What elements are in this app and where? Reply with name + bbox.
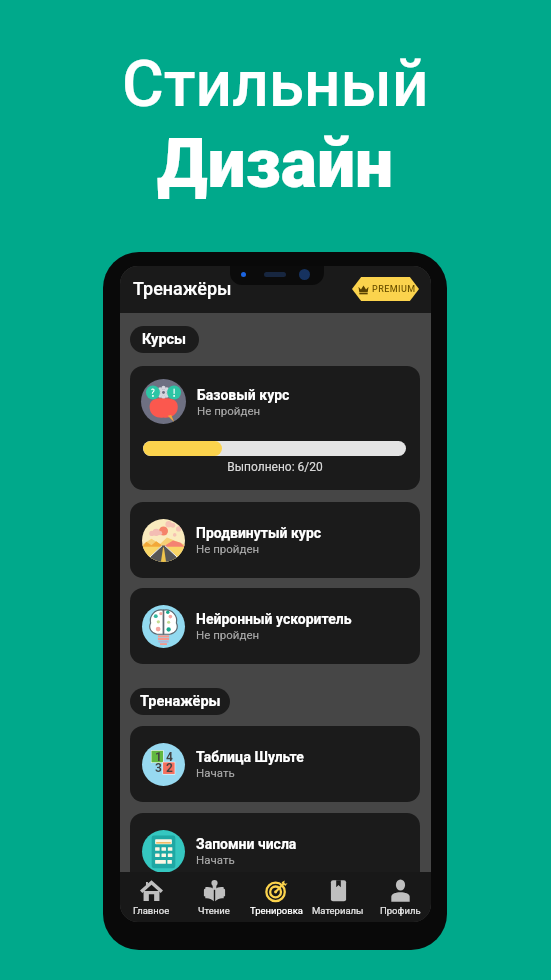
staticText: 4 [166,750,173,764]
staticText: Дизайн [157,124,394,204]
staticText: Главное [133,905,170,916]
staticText: Не пройден [196,542,260,555]
button[interactable]: Базовый курс [130,366,420,490]
staticText: PREMIUM [372,284,416,295]
button[interactable]: Чтение [183,872,245,922]
staticText: Тренировка [250,905,303,916]
staticText: Не пройден [196,628,260,641]
button[interactable]: Тренажёры [130,688,230,715]
staticText: Тренажёры [140,693,221,710]
button[interactable]: 1 [130,726,420,802]
button[interactable]: Курсы [130,326,199,353]
staticText: Базовый курс [197,387,290,403]
staticText: Тренажёры [133,278,232,299]
staticText: Материалы [312,905,364,916]
staticText: Чтение [198,905,230,916]
button[interactable]: Материалы [307,872,369,922]
button[interactable]: Запомни числа [130,813,420,889]
staticText: 1 [155,750,162,764]
button[interactable]: Профиль [369,872,431,922]
button[interactable]: Продвинутый курс [130,502,420,578]
staticText: Таблица Шульте [196,749,304,765]
staticText: Не пройден [197,404,261,417]
staticText: Запомни числа [196,836,297,852]
staticText: Профиль [380,905,421,916]
staticText: Начать [196,853,235,866]
button[interactable]: Тренировка [245,872,307,922]
staticText: 2 [166,761,173,775]
staticText: Продвинутый курс [196,525,322,541]
staticText: Выполнено: 6/20 [130,460,420,474]
button[interactable]: Нейронный ускоритель [130,588,420,664]
staticText: Курсы [142,331,187,348]
staticText: 3 [155,761,162,775]
button[interactable]: PREMIUM [352,277,419,301]
button[interactable]: Главное [120,872,183,922]
staticText: Нейронный ускоритель [196,611,352,627]
staticText: Стильный [122,47,429,122]
staticText: Начать [196,766,235,779]
